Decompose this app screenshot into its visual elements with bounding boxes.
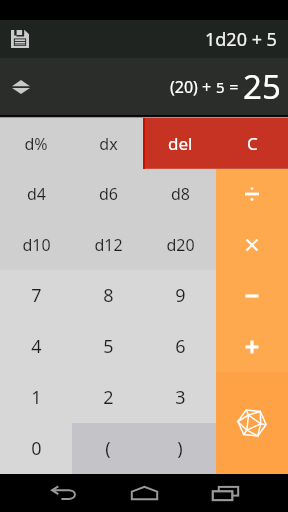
staticText: 9 <box>175 283 186 308</box>
button[interactable]: 5 <box>72 321 144 372</box>
staticText: 5 <box>103 334 114 359</box>
button[interactable]: del <box>144 118 216 169</box>
staticText: d8 <box>171 183 190 205</box>
staticText: 3 <box>175 385 186 410</box>
staticText: 7 <box>31 283 42 308</box>
staticText: d4 <box>27 183 46 205</box>
staticText: ) <box>177 436 183 461</box>
button[interactable]: d% <box>0 118 72 169</box>
staticText: 25 <box>243 64 281 109</box>
staticText: 4 <box>31 334 42 359</box>
button[interactable]: ( <box>72 423 144 474</box>
button[interactable]: 4 <box>0 321 72 372</box>
button[interactable]: Home <box>124 474 164 512</box>
staticText: 8 <box>103 283 114 308</box>
button[interactable]: Expand history <box>5 71 37 103</box>
button[interactable]: d12 <box>72 219 144 270</box>
button[interactable]: ) <box>144 423 216 474</box>
button[interactable]: 7 <box>0 270 72 321</box>
button[interactable]: 8 <box>72 270 144 321</box>
staticText: dx <box>99 133 118 155</box>
button[interactable]: 6 <box>144 321 216 372</box>
staticText: 5 <box>216 77 225 97</box>
button[interactable]: 1 <box>0 372 72 423</box>
button[interactable]: d8 <box>144 169 216 219</box>
button[interactable]: 0 <box>0 423 72 474</box>
button[interactable]: Recent apps <box>205 474 245 512</box>
button[interactable]: Subtract <box>216 270 288 321</box>
button[interactable]: 9 <box>144 270 216 321</box>
staticText: d6 <box>99 183 118 205</box>
staticText: 6 <box>175 334 186 359</box>
button[interactable]: 3 <box>144 372 216 423</box>
button[interactable]: dx <box>72 118 144 169</box>
staticText: 1d20 + 5 <box>205 27 277 52</box>
button[interactable]: 2 <box>72 372 144 423</box>
button[interactable]: Back <box>44 474 84 512</box>
staticText: (20) + <box>170 76 216 98</box>
button[interactable]: Multiply <box>216 219 288 270</box>
staticText: 1 <box>31 385 42 410</box>
staticText: d20 <box>166 234 195 256</box>
button[interactable]: d4 <box>0 169 72 219</box>
staticText: = <box>225 76 243 98</box>
button[interactable]: Add <box>216 321 288 372</box>
staticText: d12 <box>94 234 123 256</box>
button[interactable]: d10 <box>0 219 72 270</box>
staticText: C <box>247 132 258 155</box>
staticText: d10 <box>22 234 51 256</box>
staticText: ( <box>105 436 111 461</box>
staticText: 2 <box>103 385 114 410</box>
button[interactable]: Divide <box>216 169 288 219</box>
button[interactable]: Roll dice <box>216 372 288 474</box>
staticText: 0 <box>31 436 42 461</box>
staticText: del <box>168 132 193 155</box>
button[interactable]: C <box>216 118 288 169</box>
button[interactable]: d20 <box>144 219 216 270</box>
button[interactable]: d6 <box>72 169 144 219</box>
button[interactable]: Save <box>5 24 35 54</box>
staticText: d% <box>24 133 48 155</box>
